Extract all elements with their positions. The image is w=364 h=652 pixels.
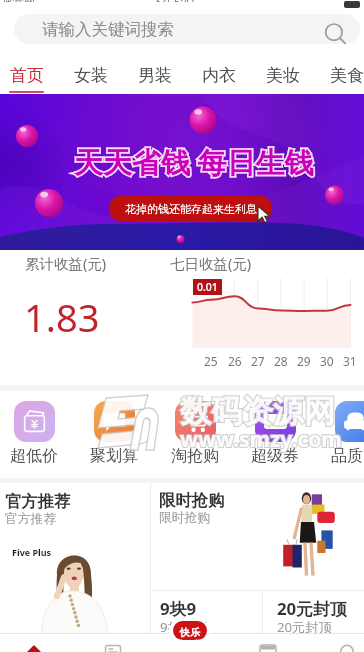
staticText: 30 — [320, 353, 334, 369]
staticText: 累计收益(元) — [25, 253, 107, 273]
button[interactable]: 超低价 — [0, 391, 74, 478]
staticText: 美食 — [330, 65, 364, 86]
button[interactable]: 20元封顶 — [263, 591, 364, 633]
button[interactable]: 女装 — [59, 52, 123, 94]
staticText: 天天省钱 每日生钱 — [74, 142, 314, 182]
staticText: 品质家 — [331, 446, 364, 466]
staticText: 26 — [228, 353, 242, 369]
button[interactable]: 首页 — [0, 52, 59, 94]
button[interactable]: 9块9 — [151, 591, 262, 633]
staticText: 超级券 — [251, 446, 299, 466]
staticText: 0.01 — [197, 280, 218, 294]
staticText: 花掉的钱还能存起来生利息 — [125, 202, 257, 216]
staticText: 女装 — [74, 65, 108, 86]
button[interactable]: 男装 — [123, 52, 187, 94]
staticText: 官方推荐 — [5, 491, 71, 512]
button[interactable]: 请输入关键词搜索 — [14, 14, 360, 44]
button[interactable]: 首页 — [4, 634, 64, 652]
staticText: 20元封顶 — [277, 618, 332, 636]
button[interactable]: 超级券 — [235, 391, 315, 478]
staticText: 内衣 — [202, 65, 236, 86]
staticText: 9块9 — [160, 597, 197, 620]
button[interactable]: 天天省钱 每日生钱 — [0, 94, 364, 250]
button[interactable]: 购物车 — [238, 634, 298, 652]
staticText: 请输入关键词搜索 — [42, 19, 174, 40]
staticText: 9折封顶 — [160, 618, 208, 636]
staticText: 七日收益(元) — [170, 253, 252, 273]
staticText: 25 — [204, 353, 218, 369]
button[interactable]: 限时抢购 — [151, 483, 364, 590]
staticText: 天天省钱 每日生钱 — [74, 142, 314, 182]
button[interactable]: 我的 — [317, 634, 364, 652]
staticText: 超低价 — [10, 446, 58, 466]
staticText: 速营商 — [2, 0, 35, 2]
staticText: 下午5:41 — [152, 0, 196, 2]
staticText: 31 — [343, 353, 357, 369]
staticText: www.smzy.com — [180, 425, 342, 454]
button[interactable]: 花掉的钱还能存起来生利息 — [109, 195, 272, 222]
staticText: 快乐 — [180, 626, 200, 639]
staticText: 美妆 — [266, 65, 300, 86]
staticText: 官方推荐 — [5, 511, 57, 527]
button[interactable]: 美妆 — [251, 52, 315, 94]
staticText: 限时抢购 — [159, 490, 225, 511]
staticText: 1.83 — [24, 291, 100, 343]
button[interactable]: 淘抢购 — [155, 391, 235, 478]
button[interactable]: 官方推荐 — [0, 483, 150, 633]
staticText: 27 — [251, 353, 265, 369]
staticText: 数码资源网 — [180, 392, 335, 431]
button[interactable]: 品质家 — [315, 391, 364, 478]
staticText: 限时抢购 — [159, 510, 211, 526]
button[interactable]: 内衣 — [187, 52, 251, 94]
staticText: 扫码赚 — [180, 639, 200, 640]
staticText: 20元封顶 — [277, 597, 347, 620]
button[interactable]: 订单 — [83, 634, 143, 652]
staticText: 淘抢购 — [171, 446, 219, 466]
staticText: 聚划算 — [90, 446, 138, 466]
staticText: Five Plus — [12, 546, 52, 558]
staticText: 数码资源网 — [180, 392, 335, 431]
staticText: 29 — [297, 353, 311, 369]
button[interactable]: 聚划算 — [74, 391, 154, 478]
staticText: 男装 — [138, 65, 172, 86]
staticText: 首页 — [10, 65, 44, 86]
staticText: 28 — [274, 353, 288, 369]
button[interactable]: 美食 — [315, 52, 364, 94]
button[interactable]: 扫码赚 — [173, 621, 207, 640]
staticText: www.smzy.com — [180, 425, 342, 454]
